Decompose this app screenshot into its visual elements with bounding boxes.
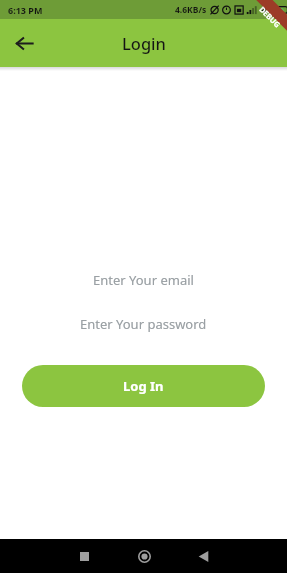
staticText: Enter Your email xyxy=(93,271,194,289)
button[interactable]: Back xyxy=(7,26,41,60)
staticText: DEBUG xyxy=(257,4,283,30)
button[interactable]: Enter Your email xyxy=(0,265,287,295)
staticText: Login xyxy=(122,32,166,54)
button[interactable]: Back xyxy=(189,542,217,570)
staticText: Log In xyxy=(123,377,164,395)
button[interactable]: Log In xyxy=(22,365,265,407)
staticText: Enter Your password xyxy=(80,315,207,333)
button[interactable]: Recent apps xyxy=(70,542,98,570)
staticText: 4.6KB/s xyxy=(175,4,207,16)
button[interactable]: Enter Your password xyxy=(0,309,287,339)
button[interactable]: Home xyxy=(130,542,158,570)
staticText: 6:13 PM xyxy=(8,4,43,16)
